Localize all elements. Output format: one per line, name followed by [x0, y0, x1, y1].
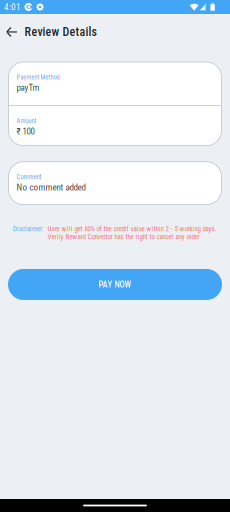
staticText: Review Details [24, 25, 96, 39]
staticText: Comment [16, 173, 41, 181]
staticText: Disclaimer: [13, 225, 44, 233]
staticText: No comment added [16, 182, 85, 193]
staticText: ₹ 100 [16, 126, 34, 137]
button[interactable]: PAY NOW [8, 269, 222, 300]
staticText: Payment Method [16, 73, 59, 81]
staticText: payTm [16, 82, 39, 93]
button[interactable]: Back [0, 20, 23, 44]
staticText: User will get 60% of the credit value wi… [47, 225, 216, 241]
staticText: Amount [16, 117, 36, 125]
staticText: PAY NOW [98, 279, 131, 290]
staticText: 4:01 [4, 1, 21, 12]
